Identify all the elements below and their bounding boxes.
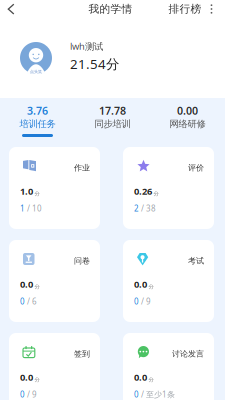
staticText: lwh测试 bbox=[70, 40, 103, 52]
staticText: 0 bbox=[20, 296, 25, 307]
staticText: 分 bbox=[148, 376, 153, 383]
staticText: 讨论发言 bbox=[172, 349, 204, 359]
staticText: / 至少1条 bbox=[141, 389, 175, 400]
button[interactable]: 作业 bbox=[9, 147, 100, 229]
staticText: 0.0 bbox=[20, 278, 33, 290]
staticText: 分 bbox=[148, 283, 153, 290]
button[interactable]: 17.78 bbox=[75, 98, 150, 147]
button[interactable]: 讨论发言 bbox=[123, 333, 214, 400]
staticText: / 38 bbox=[141, 203, 156, 214]
staticText: 排行榜 bbox=[168, 2, 201, 15]
staticText: / 10 bbox=[27, 203, 42, 214]
button[interactable]: 3.76 bbox=[0, 98, 75, 147]
staticText: 我的学情 bbox=[88, 2, 132, 15]
button[interactable]: 考试 bbox=[123, 240, 214, 322]
staticText: 作业 bbox=[74, 163, 90, 173]
staticText: 0 bbox=[134, 389, 139, 400]
staticText: 分 bbox=[34, 376, 39, 383]
button[interactable]: 问卷 bbox=[9, 240, 100, 322]
staticText: 考试 bbox=[188, 256, 204, 266]
button[interactable]: 返回 bbox=[0, 0, 22, 18]
staticText: 17.78 bbox=[99, 103, 126, 118]
staticText: 问卷 bbox=[74, 256, 90, 266]
button[interactable]: 0.00 bbox=[150, 98, 225, 147]
staticText: 1.0 bbox=[20, 185, 33, 197]
staticText: 分 bbox=[153, 190, 158, 197]
staticText: 0.26 bbox=[134, 185, 152, 197]
staticText: 分 bbox=[34, 190, 39, 197]
button[interactable]: 排行榜 bbox=[167, 0, 203, 18]
staticText: 0 bbox=[134, 296, 139, 307]
staticText: / 9 bbox=[27, 389, 37, 400]
button[interactable]: 更多 bbox=[203, 0, 220, 18]
button[interactable]: 签到 bbox=[9, 333, 100, 400]
staticText: 2 bbox=[134, 203, 139, 214]
staticText: 分 bbox=[34, 283, 39, 290]
staticText: 0.0 bbox=[134, 278, 147, 290]
staticText: 评价 bbox=[188, 163, 204, 173]
staticText: 签到 bbox=[74, 349, 90, 359]
staticText: 0.0 bbox=[134, 371, 147, 383]
staticText: 网络研修 bbox=[169, 118, 205, 130]
staticText: 0 bbox=[20, 389, 25, 400]
staticText: 3.76 bbox=[27, 103, 48, 118]
staticText: 培训任务 bbox=[19, 118, 55, 130]
staticText: / 6 bbox=[27, 296, 37, 307]
staticText: 1 bbox=[20, 203, 25, 214]
staticText: 0.0 bbox=[20, 371, 33, 383]
staticText: / 9 bbox=[141, 296, 151, 307]
staticText: 0.00 bbox=[177, 103, 198, 118]
staticText: 点头笑 bbox=[30, 69, 42, 74]
staticText: 同步培训 bbox=[94, 118, 130, 130]
staticText: 21.54分 bbox=[70, 55, 119, 73]
button[interactable]: 评价 bbox=[123, 147, 214, 229]
